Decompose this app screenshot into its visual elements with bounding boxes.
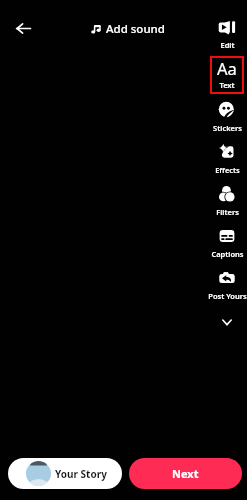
staticText: Text bbox=[219, 80, 235, 90]
button[interactable]: Back bbox=[10, 15, 37, 42]
button[interactable]: Post Yours bbox=[205, 269, 247, 301]
staticText: Aa bbox=[217, 57, 237, 79]
button[interactable]: Stickers bbox=[205, 101, 247, 133]
button[interactable]: Your Story bbox=[8, 458, 122, 489]
button[interactable]: Filters bbox=[205, 185, 247, 217]
button[interactable]: Captions bbox=[205, 227, 247, 259]
staticText: Stickers bbox=[213, 123, 242, 133]
staticText: Captions bbox=[211, 249, 244, 259]
button[interactable]: Edit bbox=[205, 18, 247, 50]
staticText: Next bbox=[172, 466, 199, 481]
button[interactable]: Add sound bbox=[91, 19, 165, 39]
button[interactable]: Collapse toolbar bbox=[214, 309, 240, 335]
staticText: Add sound bbox=[106, 21, 165, 37]
staticText: Filters bbox=[216, 207, 239, 217]
staticText: Your Story bbox=[55, 467, 107, 481]
button[interactable]: Next bbox=[129, 458, 242, 489]
button[interactable]: Aa bbox=[210, 56, 244, 94]
staticText: Effects bbox=[215, 165, 240, 175]
staticText: Post Yours bbox=[208, 291, 247, 301]
button[interactable]: Effects bbox=[205, 143, 247, 175]
staticText: Edit bbox=[220, 40, 235, 50]
